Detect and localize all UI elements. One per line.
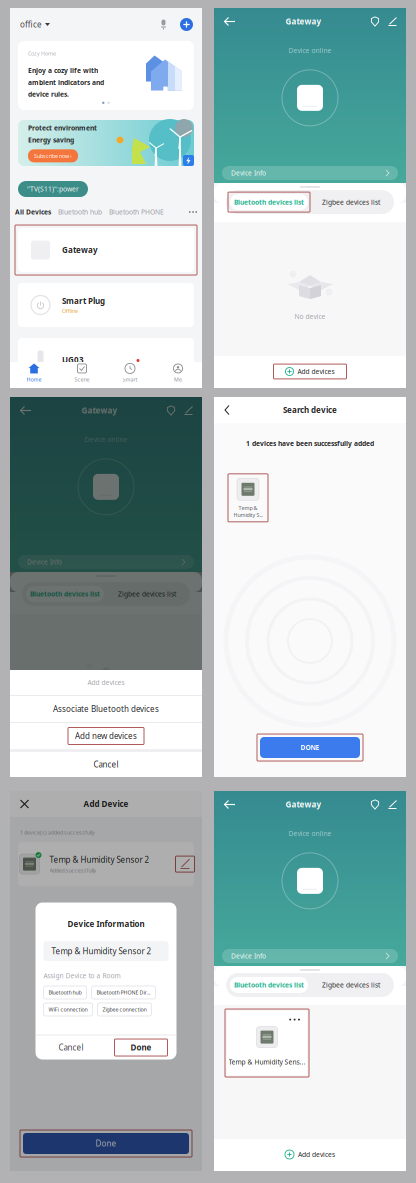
button[interactable]: Rename device	[175, 856, 194, 872]
button[interactable]: Me	[154, 362, 202, 388]
button[interactable]: Back	[222, 798, 237, 811]
staticText: Device Info	[231, 952, 266, 960]
button[interactable]: Security	[370, 15, 380, 27]
staticText: Bluetooth devices list	[30, 590, 100, 598]
button[interactable]: Back	[222, 402, 232, 417]
staticText: All Devices	[15, 208, 51, 216]
staticText: 1 devices have been successfully added	[246, 439, 374, 448]
button[interactable]: Temp &	[228, 474, 268, 522]
button[interactable]: Security	[166, 404, 176, 416]
staticText: Cancel	[93, 759, 118, 770]
button[interactable]: Bluetooth devices list	[228, 192, 310, 212]
staticText: Device online	[288, 829, 331, 838]
button[interactable]: Bluetooth devices list	[228, 975, 310, 995]
staticText: device rules.	[28, 90, 69, 99]
staticText: Humidity S...	[233, 511, 262, 518]
staticText: Cozy Home	[28, 50, 56, 57]
staticText: Zigbee connection	[102, 1006, 146, 1013]
staticText: Done	[95, 1138, 116, 1149]
button[interactable]: Scene	[58, 362, 106, 388]
staticText: Bluetooth hub	[48, 989, 81, 996]
staticText: Bluetooth devices list	[234, 198, 304, 206]
button[interactable]: Temp & Humidity Sens...	[225, 1009, 309, 1077]
staticText: Add Device	[83, 799, 128, 809]
button[interactable]: Close	[18, 797, 31, 810]
staticText: Add new devices	[75, 731, 137, 741]
staticText: Associate Bluetooth devices	[53, 704, 159, 714]
button[interactable]: Bluetooth PHONE	[109, 208, 164, 216]
staticText: Bluetooth PHONE Direct	[96, 989, 150, 996]
staticText: Bluetooth hub	[58, 208, 102, 216]
button[interactable]: Done	[20, 1130, 192, 1157]
button[interactable]: DONE	[257, 734, 363, 761]
button[interactable]: More	[189, 211, 197, 213]
staticText: Device Info	[27, 558, 62, 566]
staticText: UG03	[62, 355, 84, 365]
staticText: WiFi connection	[48, 1006, 87, 1013]
staticText: Device Info	[231, 169, 266, 177]
button[interactable]: UG03	[15, 335, 197, 385]
staticText: Device Information	[67, 918, 144, 929]
staticText: Gateway	[81, 405, 117, 416]
staticText: Smart	[122, 376, 137, 383]
staticText: Add devices	[298, 1150, 335, 1159]
button[interactable]: Back	[18, 404, 33, 417]
button[interactable]: Add device	[179, 17, 194, 32]
button[interactable]: Voice	[157, 16, 170, 32]
staticText: Temp &	[238, 504, 257, 511]
button[interactable]: Bluetooth devices list	[24, 584, 106, 604]
button[interactable]: Security	[370, 798, 380, 810]
staticText: Gateway	[62, 245, 98, 255]
staticText: Me	[174, 376, 182, 383]
button[interactable]: Smart Plug	[15, 280, 197, 330]
staticText: ambient indicators and	[28, 78, 104, 87]
button[interactable]: Associate Bluetooth devices	[10, 696, 202, 722]
staticText: Done	[130, 1042, 151, 1053]
staticText: Zigbee devices list	[118, 590, 176, 598]
button[interactable]: All Devices	[15, 208, 51, 216]
staticText: Assign Device to a Room	[43, 971, 120, 980]
button[interactable]: Gateway	[15, 225, 197, 275]
staticText: Add devices	[297, 367, 334, 376]
button[interactable]: Bluetooth PHONE Direct	[91, 986, 155, 999]
button[interactable]: office	[18, 15, 52, 34]
button[interactable]: Add devices	[273, 364, 346, 379]
button[interactable]: Bluetooth hub	[43, 986, 86, 999]
button[interactable]: Home	[10, 362, 58, 388]
button[interactable]: Add devices	[279, 1147, 341, 1162]
button[interactable]: Done	[106, 1035, 176, 1059]
button[interactable]: Smart	[106, 362, 154, 388]
button[interactable]: Zigbee connection	[97, 1003, 151, 1016]
staticText: office	[20, 19, 42, 30]
staticText: Device online	[288, 46, 331, 55]
button[interactable]: Bluetooth hub	[58, 208, 102, 216]
staticText: No device	[294, 312, 325, 321]
staticText: Smart Plug	[62, 296, 105, 306]
staticText: 1 device(s) added successfully	[20, 829, 95, 836]
staticText: Scene	[74, 376, 89, 383]
staticText: Device online	[84, 435, 127, 444]
staticText: DONE	[300, 743, 319, 752]
button[interactable]: Zigbee devices list	[106, 584, 188, 604]
button[interactable]: Edit	[183, 405, 194, 416]
button[interactable]: WiFi connection	[43, 1003, 92, 1016]
button[interactable]: Zigbee devices list	[310, 192, 392, 212]
staticText: Temp & Humidity Sensor 2	[51, 946, 151, 956]
staticText: Enjoy a cozy life with	[28, 66, 98, 75]
button[interactable]: Zigbee devices list	[310, 975, 392, 995]
staticText: Temp & Humidity Sensor 2	[49, 854, 149, 865]
button[interactable]: Add new devices	[10, 723, 202, 749]
button[interactable]: Back	[222, 15, 237, 28]
button[interactable]: Cancel	[36, 1035, 106, 1059]
staticText: Add devices	[87, 678, 124, 687]
staticText: Energy saving	[28, 135, 74, 144]
button[interactable]: Edit	[387, 16, 398, 27]
staticText: Zigbee devices list	[322, 198, 380, 206]
staticText: Gateway	[285, 799, 321, 810]
button[interactable]: Cancel	[10, 752, 202, 777]
staticText: Protect environment	[28, 124, 97, 132]
button[interactable]: Edit	[387, 799, 398, 810]
staticText: Subscribe now ›	[34, 152, 72, 159]
staticText: "TV(S11)":power	[27, 185, 79, 193]
staticText: Added successfully	[49, 867, 96, 874]
